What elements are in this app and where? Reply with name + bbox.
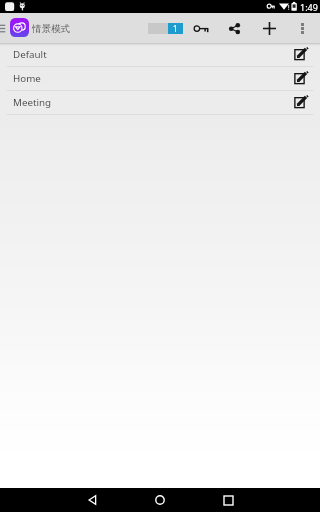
button[interactable]: Profile count: [148, 23, 183, 34]
button[interactable]: Navigation drawer: [0, 15, 9, 41]
button[interactable]: Edit: [291, 93, 311, 113]
button[interactable]: More options: [293, 18, 312, 38]
staticText: Home: [13, 72, 41, 85]
button[interactable]: Meeting: [0, 91, 320, 114]
button[interactable]: Recents: [213, 488, 243, 512]
staticText: 情景模式: [32, 23, 70, 35]
button[interactable]: Add: [258, 17, 280, 39]
button[interactable]: Home: [145, 488, 175, 512]
staticText: Meeting: [13, 96, 52, 109]
button[interactable]: Share: [224, 18, 245, 38]
staticText: 1: [173, 23, 178, 34]
button[interactable]: Back: [77, 488, 107, 512]
button[interactable]: Default: [0, 43, 320, 66]
staticText: 1:49: [300, 1, 318, 13]
button[interactable]: Edit: [291, 69, 311, 89]
button[interactable]: Edit: [291, 45, 311, 65]
button[interactable]: Password: [186, 17, 215, 39]
staticText: Default: [13, 48, 47, 61]
button[interactable]: Home: [0, 67, 320, 90]
